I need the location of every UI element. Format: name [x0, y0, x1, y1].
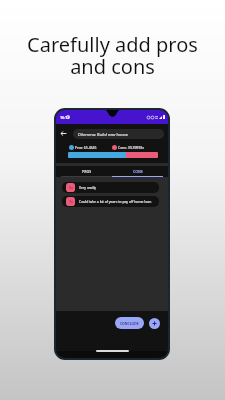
staticText: CONS: [133, 169, 143, 174]
button[interactable]: Back: [60, 130, 67, 137]
staticText: CONCLUDE: [120, 321, 139, 326]
staticText: Pros: 65.4345: [75, 145, 97, 150]
staticText: Carefully add pros and cons: [0, 31, 225, 80]
button[interactable]: Add: [149, 318, 160, 329]
staticText: Dilemma: Build new house: [78, 132, 129, 137]
staticText: 7x: [69, 199, 73, 204]
staticText: Very costly: [79, 185, 97, 190]
button[interactable]: 5x: [62, 182, 159, 193]
staticText: 5x: [69, 185, 73, 190]
button[interactable]: CONCLUDE: [115, 317, 144, 329]
staticText: Could take a lot of years to pay off hom…: [79, 199, 152, 204]
button[interactable]: PROS: [61, 166, 112, 176]
staticText: PROS: [82, 169, 92, 174]
staticText: 16:13: [60, 115, 70, 120]
button[interactable]: CONS: [112, 166, 163, 176]
staticText: Cons: 39.39998x: [118, 145, 144, 150]
button[interactable]: Dilemma: Build new house: [73, 129, 164, 139]
button[interactable]: 7x: [62, 196, 159, 207]
